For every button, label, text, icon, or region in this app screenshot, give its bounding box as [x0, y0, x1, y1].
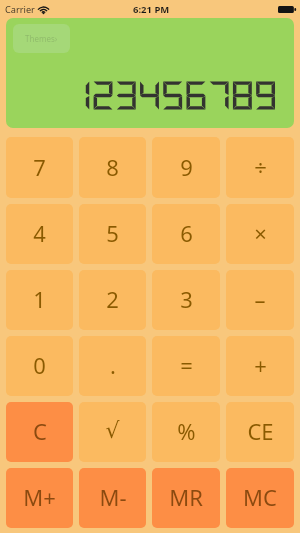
staticText: 1: [33, 284, 46, 314]
staticText: 6:21 PM: [133, 3, 170, 16]
button[interactable]: 9: [152, 137, 220, 198]
button[interactable]: .: [79, 336, 146, 396]
staticText: ×: [254, 218, 267, 248]
staticText: CE: [247, 416, 274, 446]
staticText: C: [33, 416, 47, 446]
staticText: 9: [180, 152, 193, 182]
button[interactable]: MC: [226, 468, 294, 528]
button[interactable]: 7: [6, 137, 73, 198]
staticText: 7: [33, 152, 46, 182]
staticText: 8: [106, 152, 119, 182]
button[interactable]: 2: [79, 270, 146, 330]
staticText: 3: [180, 284, 193, 314]
button[interactable]: 4: [6, 204, 73, 264]
button[interactable]: 3: [152, 270, 220, 330]
button[interactable]: 1: [6, 270, 73, 330]
staticText: =: [180, 350, 193, 380]
button[interactable]: Themes›: [13, 24, 70, 53]
button[interactable]: CE: [226, 402, 294, 462]
staticText: 0: [33, 350, 46, 380]
button[interactable]: MR: [152, 468, 220, 528]
button[interactable]: +: [226, 336, 294, 396]
button[interactable]: –: [226, 270, 294, 330]
staticText: M-: [99, 482, 127, 512]
button[interactable]: ÷: [226, 137, 294, 198]
button[interactable]: 6: [152, 204, 220, 264]
staticText: MR: [169, 482, 203, 512]
staticText: 5: [106, 218, 119, 248]
staticText: Carrier: [5, 3, 35, 16]
staticText: 6: [180, 218, 193, 248]
button[interactable]: √: [79, 402, 146, 462]
staticText: ÷: [254, 152, 267, 182]
button[interactable]: %: [152, 402, 220, 462]
staticText: +: [254, 350, 267, 380]
button[interactable]: C: [6, 402, 73, 462]
staticText: √: [105, 418, 120, 444]
staticText: Themes›: [25, 33, 58, 44]
button[interactable]: M+: [6, 468, 73, 528]
button[interactable]: =: [152, 336, 220, 396]
button[interactable]: M-: [79, 468, 146, 528]
button[interactable]: 0: [6, 336, 73, 396]
button[interactable]: ×: [226, 204, 294, 264]
staticText: %: [177, 416, 196, 446]
staticText: M+: [23, 482, 56, 512]
button[interactable]: 8: [79, 137, 146, 198]
staticText: 4: [33, 218, 46, 248]
staticText: .: [110, 350, 116, 380]
staticText: –: [254, 284, 266, 314]
staticText: 2: [106, 284, 119, 314]
staticText: MC: [243, 482, 277, 512]
button[interactable]: 5: [79, 204, 146, 264]
